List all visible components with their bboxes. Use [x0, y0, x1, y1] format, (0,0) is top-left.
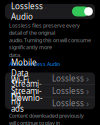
- staticText: Wi-Fi Streaming: [11, 75, 42, 107]
- staticText: Downloads: [11, 93, 43, 114]
- staticText: Lossless files preserve every detail of …: [9, 22, 80, 36]
- button[interactable]: About Lossless Audio: [9, 59, 60, 67]
- button[interactable]: Downloads: [5, 97, 95, 109]
- button[interactable]: ‹: [0, 0, 35, 4]
- button[interactable]: Wi-Fi Streaming: [5, 85, 95, 97]
- staticText: ›: [86, 72, 89, 85]
- staticText: ›: [86, 85, 89, 97]
- button[interactable]: Lossless Audio: [72, 6, 89, 16]
- staticText: audio. Turning this on will consume sign…: [9, 37, 91, 51]
- staticText: ›: [86, 97, 89, 109]
- staticText: Lossless: [52, 85, 84, 96]
- staticText: Mobile Data Streaming: [11, 57, 42, 100]
- staticText: data.: [9, 51, 21, 58]
- staticText: Lossless: [52, 98, 84, 108]
- staticText: Lossless Audio: [11, 1, 43, 22]
- staticText: Content downloaded previously will conti…: [9, 112, 84, 125]
- button[interactable]: Mobile Data Streaming: [5, 72, 95, 84]
- staticText: About Lossless Audio: [9, 60, 60, 67]
- staticText: Lossless: [52, 73, 84, 84]
